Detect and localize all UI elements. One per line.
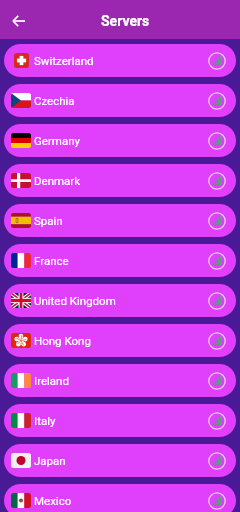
button[interactable]: Ireland <box>4 364 236 397</box>
button[interactable]: Hong Kong <box>4 324 236 357</box>
staticText: Spain <box>34 214 63 227</box>
button[interactable]: Mexico <box>4 484 236 512</box>
button[interactable]: Italy <box>4 404 236 437</box>
staticText: Switzerland <box>34 54 94 67</box>
staticText: Servers <box>101 13 150 29</box>
button[interactable]: United Kingdom <box>4 284 236 317</box>
staticText: Japan <box>34 454 66 467</box>
button[interactable]: Back <box>6 7 32 33</box>
staticText: Czechia <box>34 94 75 107</box>
staticText: Mexico <box>34 494 72 507</box>
staticText: France <box>34 254 69 267</box>
staticText: Ireland <box>34 374 69 387</box>
staticText: Germany <box>34 134 80 147</box>
button[interactable]: Japan <box>4 444 236 477</box>
button[interactable]: Denmark <box>4 164 236 197</box>
staticText: Hong Kong <box>34 334 91 347</box>
button[interactable]: Switzerland <box>4 44 236 77</box>
staticText: United Kingdom <box>34 294 116 307</box>
staticText: Denmark <box>34 174 81 187</box>
staticText: Italy <box>34 414 56 427</box>
button[interactable]: Czechia <box>4 84 236 117</box>
button[interactable]: Spain <box>4 204 236 237</box>
button[interactable]: France <box>4 244 236 277</box>
button[interactable]: Germany <box>4 124 236 157</box>
